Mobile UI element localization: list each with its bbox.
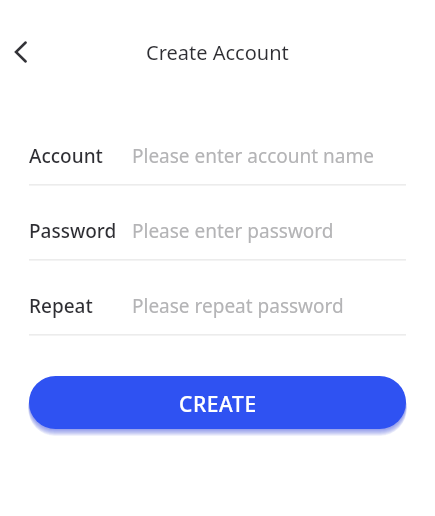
staticText: Please enter account name: [132, 143, 374, 169]
staticText: Repeat: [29, 293, 93, 319]
staticText: Account: [29, 143, 103, 169]
staticText: Please enter password: [132, 218, 334, 244]
button[interactable]: Back: [0, 30, 44, 74]
button[interactable]: Account: [29, 111, 406, 186]
button[interactable]: CREATE: [29, 376, 406, 429]
staticText: Create Account: [146, 39, 289, 66]
button[interactable]: Password: [29, 186, 406, 261]
staticText: Password: [29, 218, 117, 244]
staticText: CREATE: [179, 390, 257, 419]
staticText: Please repeat password: [132, 293, 344, 319]
button[interactable]: Repeat: [29, 261, 406, 336]
